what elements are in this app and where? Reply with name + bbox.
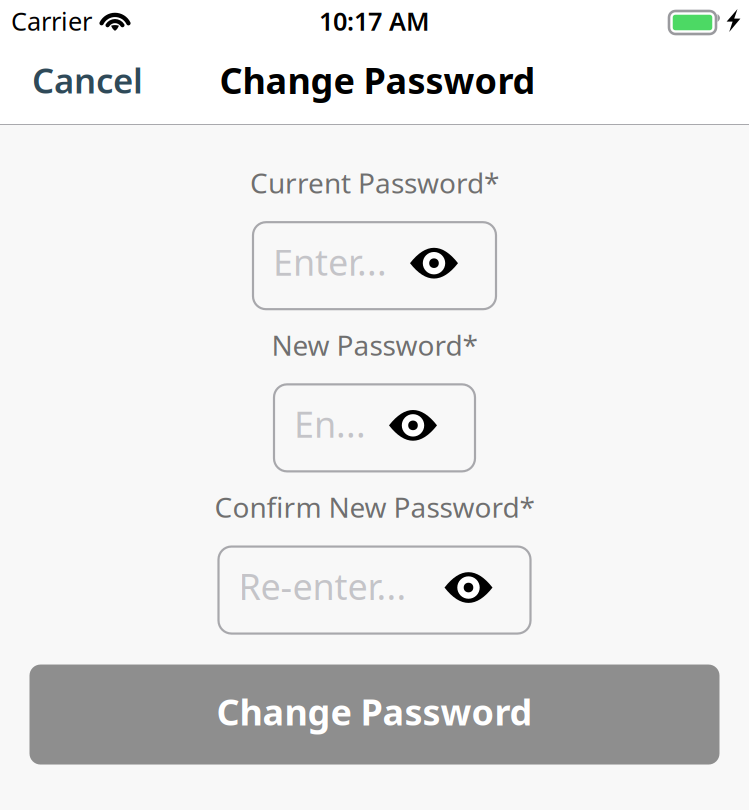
staticText: Carrier [11,4,92,38]
button[interactable]: Change Password [29,664,719,764]
button[interactable]: Re-enter... [218,546,530,633]
staticText: Confirm New Password* [214,488,534,526]
staticText: Re-enter... [238,562,406,610]
staticText: Change Password [216,688,532,735]
staticText: New Password* [271,326,477,363]
staticText: Cancel [32,57,143,103]
staticText: En... [294,400,366,448]
button[interactable]: Cancel [22,49,153,111]
staticText: 10:17 AM [319,4,430,38]
staticText: Change Password [219,56,535,104]
staticText: Current Password* [250,164,499,201]
staticText: Enter... [273,238,387,286]
button[interactable]: Enter... [253,222,496,309]
button[interactable]: En... [274,384,475,471]
